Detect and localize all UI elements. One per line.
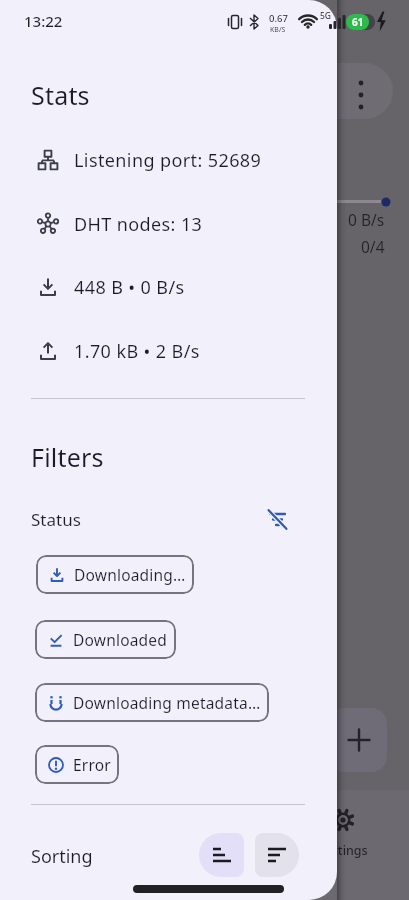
staticText: 0/4: [361, 236, 385, 257]
button[interactable]: [199, 833, 244, 877]
staticText: Listening port: 52689: [74, 148, 262, 172]
button[interactable]: [264, 507, 288, 531]
staticText: 61: [352, 15, 364, 29]
staticText: 13:22: [24, 11, 63, 31]
button[interactable]: [255, 833, 299, 877]
button[interactable]: [303, 798, 383, 862]
button[interactable]: Error: [35, 745, 119, 784]
button[interactable]: DHT nodes: 13: [36, 212, 203, 236]
staticText: Filters: [31, 440, 104, 472]
staticText: 5G: [320, 10, 332, 22]
staticText: 448 B • 0 B/s: [74, 275, 185, 299]
staticText: Stats: [31, 78, 90, 110]
staticText: DHT nodes: 13: [74, 212, 203, 236]
staticText: Downloaded: [73, 629, 168, 650]
button[interactable]: Downloaded: [35, 620, 176, 659]
staticText: 0 B/s: [348, 209, 385, 230]
button[interactable]: Downloading metadata…: [35, 683, 269, 722]
button[interactable]: 1.70 kB • 2 B/s: [36, 339, 200, 363]
staticText: 1.70 kB • 2 B/s: [74, 339, 200, 363]
button[interactable]: Downloading…: [36, 555, 194, 594]
staticText: Status: [31, 508, 81, 531]
staticText: Downloading…: [74, 564, 186, 585]
button[interactable]: [327, 708, 387, 772]
button[interactable]: [345, 79, 377, 111]
button[interactable]: 448 B • 0 B/s: [36, 275, 185, 299]
staticText: KB/S: [270, 25, 286, 35]
staticText: Downloading metadata…: [73, 692, 261, 713]
staticText: 0.67: [269, 12, 288, 25]
button[interactable]: Listening port: 52689: [36, 148, 262, 172]
staticText: Sorting: [31, 844, 93, 869]
staticText: Error: [73, 754, 111, 775]
button[interactable]: [200, 63, 393, 119]
staticText: Settings: [319, 842, 368, 859]
